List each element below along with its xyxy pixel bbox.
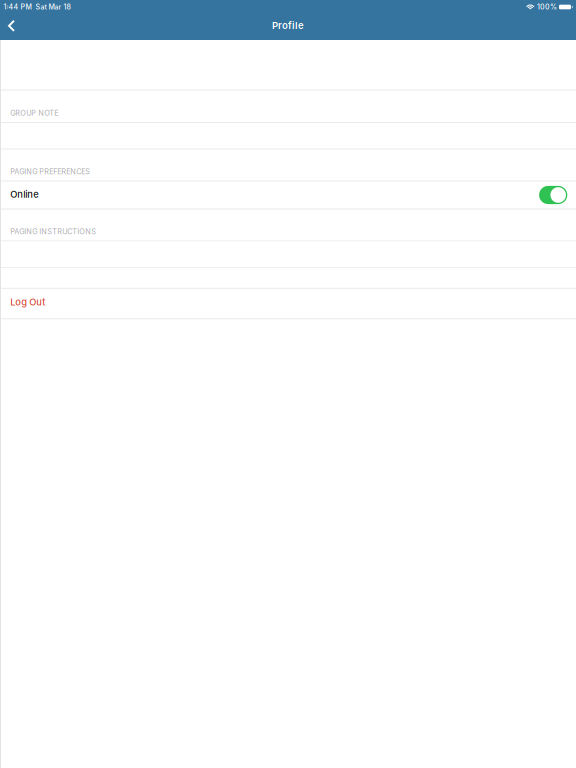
staticText: Log Out xyxy=(10,296,45,308)
button[interactable]: Log Out xyxy=(0,289,576,318)
staticText: GROUP NOTE xyxy=(10,108,58,117)
staticText: Online xyxy=(10,189,38,200)
staticText: Sat Mar 18 xyxy=(36,3,71,11)
staticText: PAGING INSTRUCTIONS xyxy=(10,227,96,236)
staticText: 1:44 PM xyxy=(4,3,32,11)
staticText: PAGING PREFERENCES xyxy=(10,167,90,176)
button[interactable]: Back xyxy=(0,14,24,40)
staticText: 100% xyxy=(537,3,557,11)
button[interactable]: Online xyxy=(0,181,576,208)
staticText: Profile xyxy=(272,20,304,31)
